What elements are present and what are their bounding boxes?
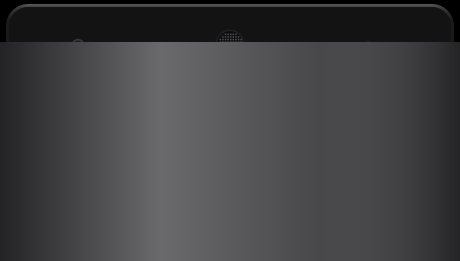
button[interactable]: Hello World! — [30, 190, 439, 210]
staticText: Hello World! — [30, 214, 117, 234]
staticText: Sample — [36, 117, 110, 146]
button[interactable]: Hello World! — [30, 166, 439, 186]
button[interactable]: Hello World! — [30, 214, 439, 234]
button[interactable]: Sample — [20, 100, 439, 162]
staticText: Hello World! — [30, 166, 122, 186]
staticText: Hello World! — [30, 190, 117, 210]
staticText: 2:18 — [27, 76, 55, 95]
